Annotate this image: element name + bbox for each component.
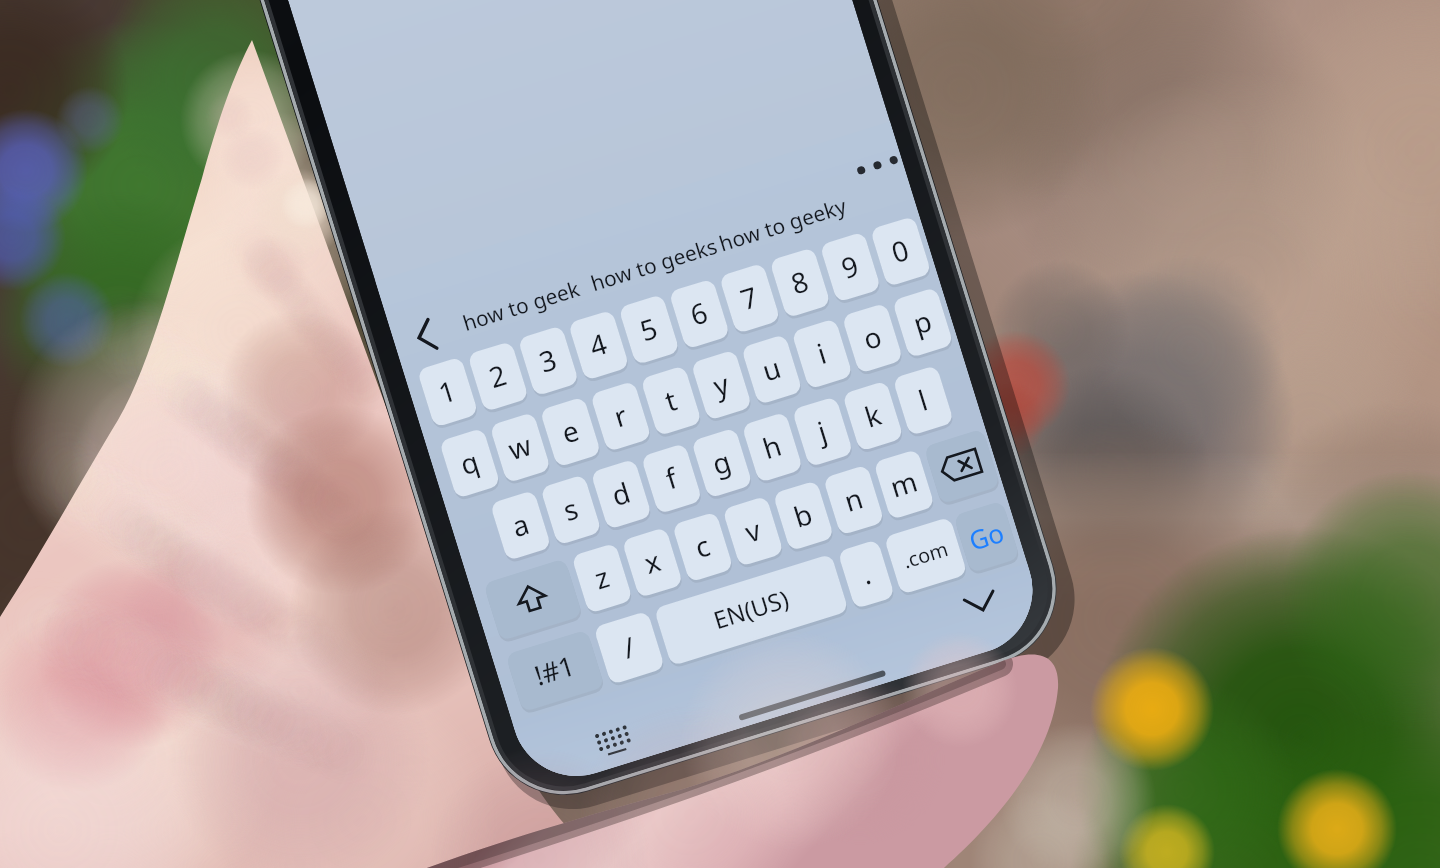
button[interactable]: Hand holding a phone showing the on-scre… bbox=[0, 0, 1440, 868]
